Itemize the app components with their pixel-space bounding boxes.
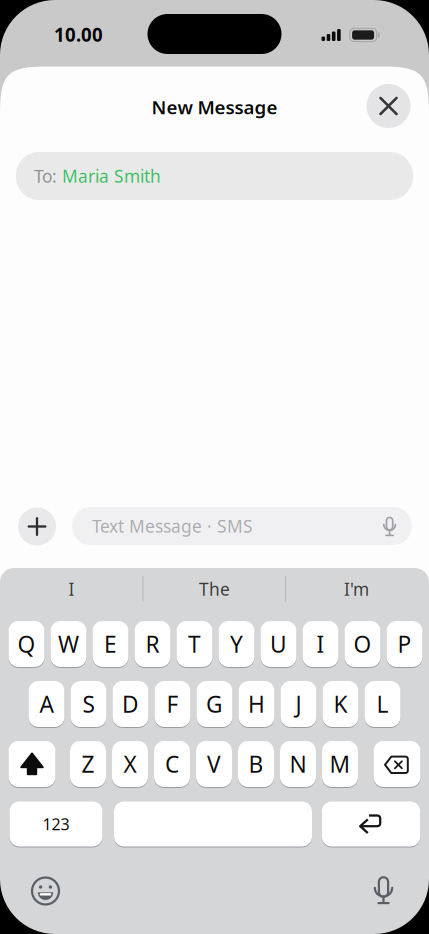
button[interactable] bbox=[363, 870, 403, 910]
button[interactable]: N bbox=[280, 741, 316, 787]
button[interactable]: M bbox=[322, 741, 358, 787]
staticText: A bbox=[39, 689, 53, 719]
button[interactable]: I'm bbox=[296, 572, 416, 606]
button[interactable] bbox=[373, 741, 420, 787]
staticText: P bbox=[397, 629, 411, 659]
staticText: 123 bbox=[42, 813, 69, 835]
staticText: F bbox=[166, 689, 178, 719]
button[interactable]: L bbox=[364, 681, 400, 727]
staticText: V bbox=[207, 749, 221, 779]
staticText: S bbox=[82, 689, 94, 719]
staticText: 10.00 bbox=[54, 22, 103, 47]
button[interactable]: A bbox=[28, 681, 64, 727]
staticText: N bbox=[289, 749, 306, 779]
button[interactable]: S bbox=[70, 681, 106, 727]
staticText: Maria Smith bbox=[62, 164, 161, 187]
button[interactable]: Q bbox=[8, 621, 44, 667]
button[interactable]: E bbox=[92, 621, 128, 667]
button[interactable]: G bbox=[196, 681, 232, 727]
button[interactable]: 123 bbox=[9, 801, 102, 846]
button[interactable]: O bbox=[344, 621, 380, 667]
button[interactable]: C bbox=[154, 741, 190, 787]
staticText: O bbox=[353, 629, 371, 659]
button[interactable]: R bbox=[134, 621, 170, 667]
staticText: Z bbox=[81, 749, 94, 779]
button[interactable] bbox=[32, 877, 59, 904]
staticText: I'm bbox=[344, 577, 369, 600]
staticText: C bbox=[165, 749, 179, 779]
button[interactable]: J bbox=[280, 681, 316, 727]
button[interactable]: H bbox=[238, 681, 274, 727]
button[interactable] bbox=[322, 801, 420, 846]
staticText: H bbox=[248, 689, 265, 719]
staticText: J bbox=[295, 689, 301, 719]
staticText: The bbox=[199, 577, 230, 600]
staticText: E bbox=[104, 629, 117, 659]
button[interactable]: D bbox=[112, 681, 148, 727]
staticText: Text Message · SMS bbox=[92, 514, 253, 537]
staticText: X bbox=[123, 749, 136, 779]
staticText: Q bbox=[17, 629, 35, 659]
staticText: R bbox=[145, 629, 159, 659]
button[interactable]: X bbox=[112, 741, 148, 787]
button[interactable]: U bbox=[260, 621, 296, 667]
button[interactable]: Text Message · SMS bbox=[72, 507, 412, 545]
button[interactable]: Z bbox=[70, 741, 106, 787]
button[interactable]: The bbox=[154, 572, 274, 606]
button[interactable]: Y bbox=[218, 621, 254, 667]
button[interactable]: V bbox=[196, 741, 232, 787]
staticText: New Message bbox=[151, 95, 277, 119]
staticText: L bbox=[376, 689, 388, 719]
staticText: D bbox=[122, 689, 139, 719]
staticText: T bbox=[188, 629, 201, 659]
button[interactable] bbox=[18, 507, 56, 545]
button[interactable]: P bbox=[386, 621, 422, 667]
staticText: To: bbox=[34, 164, 57, 187]
staticText: B bbox=[248, 749, 263, 779]
button[interactable] bbox=[8, 741, 55, 787]
button[interactable]: I bbox=[302, 621, 338, 667]
button[interactable]: To: bbox=[16, 152, 413, 200]
staticText: I bbox=[316, 629, 324, 659]
staticText: U bbox=[270, 629, 287, 659]
button[interactable] bbox=[114, 801, 312, 846]
staticText: K bbox=[333, 689, 347, 719]
staticText: I bbox=[68, 577, 74, 600]
button[interactable] bbox=[366, 84, 410, 128]
staticText: Y bbox=[230, 629, 243, 659]
button[interactable]: W bbox=[50, 621, 86, 667]
staticText: G bbox=[206, 689, 223, 719]
staticText: W bbox=[58, 629, 79, 659]
button[interactable]: B bbox=[238, 741, 274, 787]
button[interactable]: T bbox=[176, 621, 212, 667]
button[interactable]: F bbox=[154, 681, 190, 727]
button[interactable]: I bbox=[11, 572, 131, 606]
staticText: M bbox=[329, 749, 350, 779]
button[interactable]: K bbox=[322, 681, 358, 727]
